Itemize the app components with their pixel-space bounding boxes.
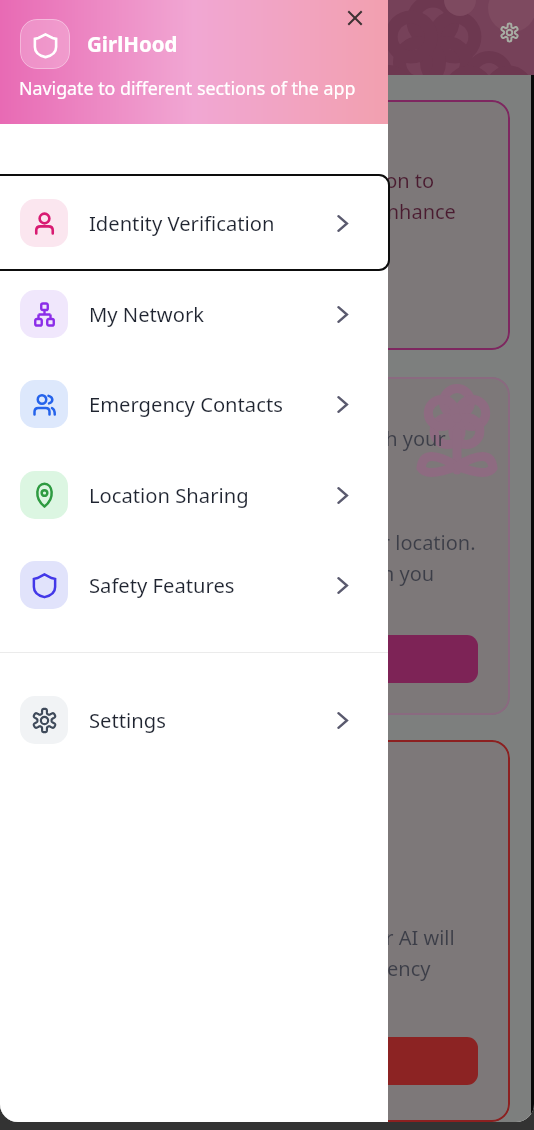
button[interactable]: Location Sharing xyxy=(0,447,388,543)
button[interactable]: Identity Verification xyxy=(0,175,388,271)
staticText: They will be notified when you xyxy=(150,560,435,587)
staticText: GirlHood xyxy=(87,30,178,58)
staticText: Share your location with your xyxy=(170,425,446,452)
staticText: Safety Features xyxy=(89,571,235,599)
button[interactable]: Settings xyxy=(491,14,527,50)
button[interactable] xyxy=(46,635,478,683)
staticText: Use facial recognition to xyxy=(207,167,435,194)
button[interactable]: My Network xyxy=(0,266,388,362)
button[interactable]: Emergency Contacts xyxy=(0,356,388,452)
staticText: Settings xyxy=(89,706,166,734)
staticText: analyse and detect emergency xyxy=(144,955,431,982)
button[interactable]: Settings xyxy=(0,672,388,768)
button[interactable] xyxy=(46,1037,478,1085)
staticText: My Network xyxy=(89,300,205,328)
staticText: Emergency Contacts xyxy=(89,390,283,418)
staticText: Navigate to different sections of the ap… xyxy=(19,76,356,100)
staticText: Instantly alert your contacts. Our AI wi… xyxy=(84,924,455,951)
staticText: verify your identity and enhance xyxy=(153,198,456,225)
button[interactable]: Close navigation drawer xyxy=(337,0,373,36)
button[interactable]: Safety Features xyxy=(0,537,388,633)
staticText: Let your trusted contacts see your locat… xyxy=(70,529,476,556)
staticText: Location Sharing xyxy=(89,481,249,509)
staticText: Identity Verification xyxy=(89,209,275,237)
